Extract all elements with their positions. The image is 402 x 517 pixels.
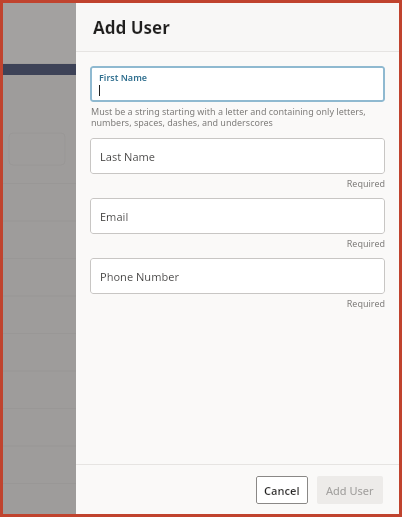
staticText: Add User [93,16,170,39]
staticText: First Name [99,71,148,83]
button[interactable]: Last Name [90,138,385,174]
staticText: Required [90,237,385,249]
staticText: Cancel [264,483,300,498]
button[interactable]: Add User [317,476,383,504]
staticText: Required [90,177,385,189]
staticText: Add User [326,483,374,498]
staticText: Last Name [100,149,156,164]
button[interactable]: Phone Number [90,258,385,294]
button[interactable]: Email [90,198,385,234]
button[interactable]: First Name [90,66,385,102]
button[interactable]: Cancel [256,476,308,504]
staticText: Phone Number [100,269,179,284]
staticText: Required [90,297,385,309]
staticText: Must be a string starting with a letter … [91,105,385,129]
staticText: Email [100,209,129,224]
